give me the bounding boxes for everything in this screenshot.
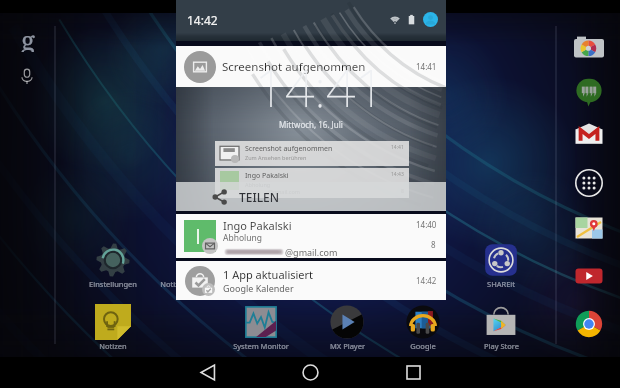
button[interactable]: App bbox=[574, 168, 604, 198]
button[interactable]: App bbox=[574, 213, 604, 243]
button[interactable]: Screenshot aufgenommen bbox=[176, 46, 446, 211]
staticText: @gmail.com bbox=[285, 246, 338, 258]
staticText: @gmail.com bbox=[245, 188, 300, 195]
staticText: TEILEN bbox=[239, 189, 280, 205]
button[interactable]: Ingo Pakalski bbox=[176, 214, 446, 258]
staticText: 14:42 bbox=[187, 12, 218, 28]
button[interactable]: App bbox=[574, 261, 604, 291]
button[interactable]: Einstellungen bbox=[84, 242, 142, 289]
staticText: 14:43 bbox=[391, 171, 404, 178]
staticText: Ingo Pakalski bbox=[223, 218, 292, 233]
staticText: Screenshot aufgenommen bbox=[245, 144, 333, 154]
staticText: g bbox=[21, 22, 35, 52]
button[interactable]: App bbox=[574, 77, 604, 107]
button[interactable]: SHAREit bbox=[472, 242, 530, 289]
staticText: Google bbox=[410, 341, 436, 351]
button[interactable]: MX Player bbox=[318, 304, 376, 351]
staticText: Zum Ansehen berühren bbox=[245, 154, 307, 161]
button[interactable]: App bbox=[574, 33, 604, 63]
staticText: Abholung bbox=[223, 232, 262, 244]
staticText: System Monitor bbox=[233, 341, 289, 351]
button[interactable]: 1 App aktualisiert bbox=[176, 261, 446, 300]
button[interactable]: System Monitor bbox=[232, 304, 290, 351]
staticText: 8 bbox=[431, 239, 436, 250]
staticText: Ingo Pakalski bbox=[245, 171, 289, 181]
button[interactable]: Home bbox=[295, 357, 326, 388]
button[interactable]: App bbox=[574, 309, 604, 339]
staticText: SHAREit bbox=[487, 279, 515, 289]
staticText: Play Store bbox=[484, 341, 519, 351]
staticText: 14:40 bbox=[416, 219, 437, 230]
button[interactable]: Notizen bbox=[84, 304, 142, 351]
button[interactable]: TEILEN bbox=[176, 182, 446, 211]
staticText: Notizen bbox=[160, 279, 188, 289]
button[interactable]: Play Store bbox=[472, 304, 530, 351]
staticText: 1 App aktualisiert bbox=[223, 267, 314, 282]
staticText: Google Kalender bbox=[223, 282, 294, 294]
staticText: Notizen bbox=[99, 341, 127, 351]
staticText: 14:41 bbox=[416, 61, 437, 72]
button[interactable]: App bbox=[574, 121, 604, 151]
button[interactable]: Voice search bbox=[18, 67, 36, 85]
button[interactable]: Google Search bbox=[13, 22, 43, 52]
staticText: Einstellungen bbox=[89, 279, 137, 289]
staticText: 14:41 bbox=[391, 144, 404, 151]
staticText: MX Player bbox=[330, 341, 365, 351]
staticText: 14:42 bbox=[416, 275, 437, 286]
staticText: Screenshot aufgenommen bbox=[222, 59, 366, 75]
staticText: Mittwoch, 16. Juli bbox=[279, 119, 343, 130]
staticText: 14:41 bbox=[255, 51, 386, 122]
button[interactable]: Notizen bbox=[145, 242, 203, 289]
button[interactable]: Google bbox=[394, 304, 452, 351]
button[interactable]: Recents bbox=[398, 357, 429, 388]
button[interactable]: Back bbox=[193, 357, 224, 388]
